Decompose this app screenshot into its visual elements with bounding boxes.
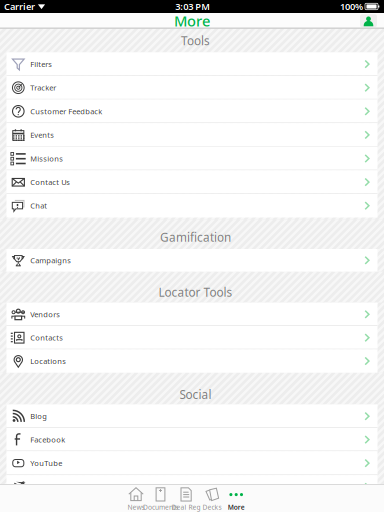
button[interactable]: Facebook [6, 428, 377, 451]
staticText: Customer Feedback [30, 106, 102, 116]
button[interactable]: Deal Reg [156, 487, 216, 512]
staticText: Facebook [30, 434, 65, 445]
staticText: 100% [340, 0, 363, 13]
button[interactable]: Tracker [6, 76, 377, 99]
button[interactable]: Decks [182, 487, 242, 512]
staticText: Social [179, 387, 211, 403]
staticText: Blog [30, 411, 47, 421]
staticText: Missions [30, 153, 63, 164]
staticText: Twitter [30, 482, 55, 492]
button[interactable]: Account [358, 13, 379, 28]
staticText: Events [30, 130, 54, 140]
staticText: Deal Reg [171, 503, 200, 512]
button[interactable]: Events [6, 123, 377, 147]
button[interactable]: News [106, 487, 166, 512]
button[interactable]: Missions [6, 147, 377, 170]
staticText: News [127, 503, 144, 512]
button[interactable]: Locations [6, 349, 377, 373]
button[interactable]: More [206, 487, 266, 512]
staticText: Filters [30, 59, 52, 69]
staticText: Carrier [4, 0, 35, 13]
button[interactable]: Customer Feedback [6, 99, 377, 123]
button[interactable]: Contacts [6, 326, 377, 349]
button[interactable]: Chat [6, 194, 377, 217]
button[interactable]: Documents [130, 487, 190, 512]
staticText: Chat [30, 201, 47, 211]
button[interactable]: YouTube [6, 451, 377, 475]
staticText: Documents [143, 503, 178, 512]
staticText: Locations [30, 356, 66, 366]
staticText: Contact Us [30, 177, 70, 187]
staticText: Tracker [30, 83, 56, 93]
button[interactable]: Filters [6, 52, 377, 76]
staticText: Tools [181, 33, 210, 49]
staticText: More [228, 503, 245, 512]
staticText: Decks [202, 503, 221, 512]
button[interactable]: Contact Us [6, 170, 377, 194]
button[interactable]: Blog [6, 404, 377, 428]
button[interactable]: Vendors [6, 303, 377, 326]
staticText: Campaigns [30, 255, 71, 265]
staticText: Contacts [30, 333, 63, 343]
staticText: Gamification [160, 229, 231, 245]
staticText: YouTube [30, 458, 62, 468]
staticText: More [174, 11, 210, 30]
button[interactable]: Twitter [6, 475, 377, 499]
button[interactable]: Campaigns [6, 249, 377, 272]
staticText: Vendors [30, 309, 60, 319]
staticText: Locator Tools [158, 284, 232, 300]
staticText: 3:03 PM [175, 0, 210, 13]
